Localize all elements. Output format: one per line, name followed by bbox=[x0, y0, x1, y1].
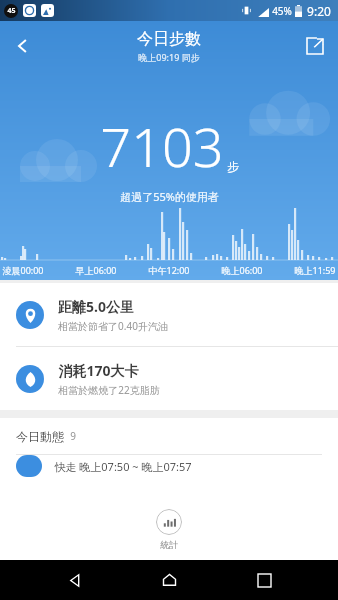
staticText: 相當於節省了0.40升汽油 bbox=[58, 319, 168, 333]
staticText: 快走 晚上07:50 ~ 晚上07:57 bbox=[54, 459, 192, 474]
button[interactable]: 消耗170大卡 bbox=[0, 347, 338, 410]
staticText: 早上06:00 bbox=[75, 264, 117, 276]
staticText: 相當於燃燒了22克脂肪 bbox=[58, 383, 160, 397]
staticText: 晚上11:59 bbox=[294, 264, 336, 276]
button[interactable]: 距離5.0公里 bbox=[0, 283, 338, 346]
staticText: 9 bbox=[70, 429, 76, 443]
button[interactable]: Home bbox=[148, 560, 190, 600]
staticText: 9:20 bbox=[307, 3, 331, 19]
button[interactable]: 統計 bbox=[136, 507, 202, 552]
staticText: 距離5.0公里 bbox=[58, 297, 134, 316]
button[interactable]: 快走 晚上07:50 ~ 晚上07:57 bbox=[0, 455, 338, 477]
staticText: 今日步數 bbox=[137, 29, 201, 49]
staticText: 淩晨00:00 bbox=[2, 264, 44, 276]
staticText: 統計 bbox=[160, 539, 178, 550]
staticText: 晚上06:00 bbox=[221, 264, 263, 276]
staticText: 今日動態 bbox=[16, 429, 64, 444]
button[interactable]: Share bbox=[292, 23, 338, 69]
staticText: 消耗170大卡 bbox=[58, 361, 139, 380]
staticText: 晚上09:19 同步 bbox=[138, 51, 200, 63]
staticText: 45 bbox=[7, 6, 16, 16]
button[interactable]: Recents bbox=[243, 560, 285, 600]
button[interactable]: Back bbox=[53, 560, 95, 600]
button[interactable]: Back bbox=[0, 23, 46, 69]
staticText: 超過了55%的使用者 bbox=[120, 189, 219, 204]
staticText: 7103 bbox=[100, 109, 224, 183]
staticText: 45% bbox=[272, 4, 292, 18]
staticText: 步 bbox=[227, 159, 239, 174]
staticText: 中午12:00 bbox=[148, 264, 190, 276]
